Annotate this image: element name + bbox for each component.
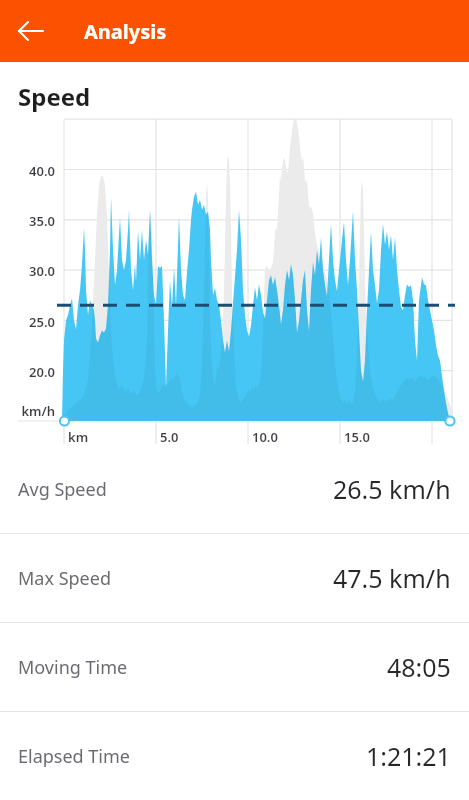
staticText: 35.0 bbox=[0, 212, 55, 230]
staticText: km bbox=[68, 428, 108, 446]
button[interactable]: Max Speed bbox=[0, 534, 469, 622]
staticText: km/h bbox=[0, 402, 55, 420]
staticText: 48:05 bbox=[387, 650, 451, 684]
staticText: 20.0 bbox=[0, 363, 55, 381]
staticText: Speed bbox=[18, 80, 91, 113]
staticText: 15.0 bbox=[344, 428, 384, 446]
staticText: 47.5 km/h bbox=[333, 561, 451, 595]
staticText: 25.0 bbox=[0, 313, 55, 331]
staticText: 1:21:21 bbox=[366, 739, 451, 773]
staticText: 40.0 bbox=[0, 162, 55, 180]
button[interactable] bbox=[8, 8, 54, 54]
button[interactable]: Avg Speed bbox=[0, 445, 469, 533]
staticText: 10.0 bbox=[252, 428, 292, 446]
staticText: 30.0 bbox=[0, 262, 55, 280]
button[interactable]: Elapsed Time bbox=[0, 712, 469, 800]
staticText: 26.5 km/h bbox=[333, 472, 451, 506]
staticText: 5.0 bbox=[160, 428, 200, 446]
button[interactable]: Moving Time bbox=[0, 623, 469, 711]
staticText: Avg Speed bbox=[18, 477, 107, 502]
staticText: Moving Time bbox=[18, 655, 128, 680]
staticText: Elapsed Time bbox=[18, 744, 130, 769]
staticText: Max Speed bbox=[18, 566, 111, 591]
staticText: Analysis bbox=[84, 18, 167, 45]
